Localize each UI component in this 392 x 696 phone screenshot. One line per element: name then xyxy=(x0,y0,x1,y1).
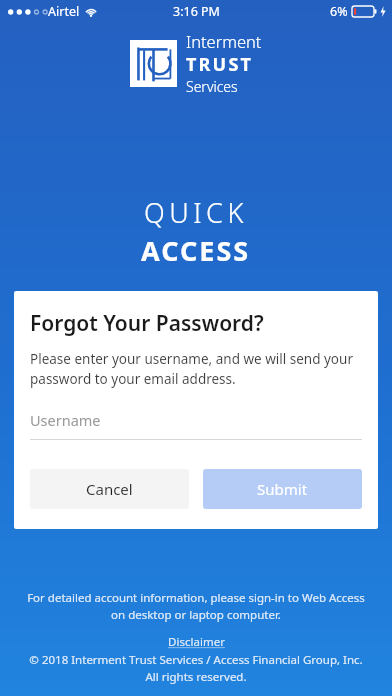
staticText: Interment xyxy=(186,30,262,52)
button[interactable]: Disclaimer xyxy=(168,634,225,650)
staticText: 6% xyxy=(330,3,348,20)
staticText: For detailed account information, please… xyxy=(24,590,368,622)
staticText: QUICK xyxy=(144,194,248,231)
staticText: Username xyxy=(30,410,101,430)
staticText: Forgot Your Password? xyxy=(30,309,264,338)
button[interactable]: Submit xyxy=(203,469,362,509)
staticText: Please enter your username, and we will … xyxy=(30,350,362,388)
staticText: Disclaimer xyxy=(168,634,225,650)
staticText: Services xyxy=(186,77,238,96)
staticText: ACCESS xyxy=(141,232,251,269)
button[interactable]: Cancel xyxy=(30,469,189,509)
staticText: Submit xyxy=(257,479,308,499)
staticText: Airtel xyxy=(48,3,80,20)
staticText: 3:16 PM xyxy=(173,3,220,20)
button[interactable]: Username xyxy=(30,410,362,440)
staticText: © 2018 Interment Trust Services / Access… xyxy=(24,652,368,684)
staticText: TRUST xyxy=(186,52,254,77)
staticText: Cancel xyxy=(86,479,133,499)
